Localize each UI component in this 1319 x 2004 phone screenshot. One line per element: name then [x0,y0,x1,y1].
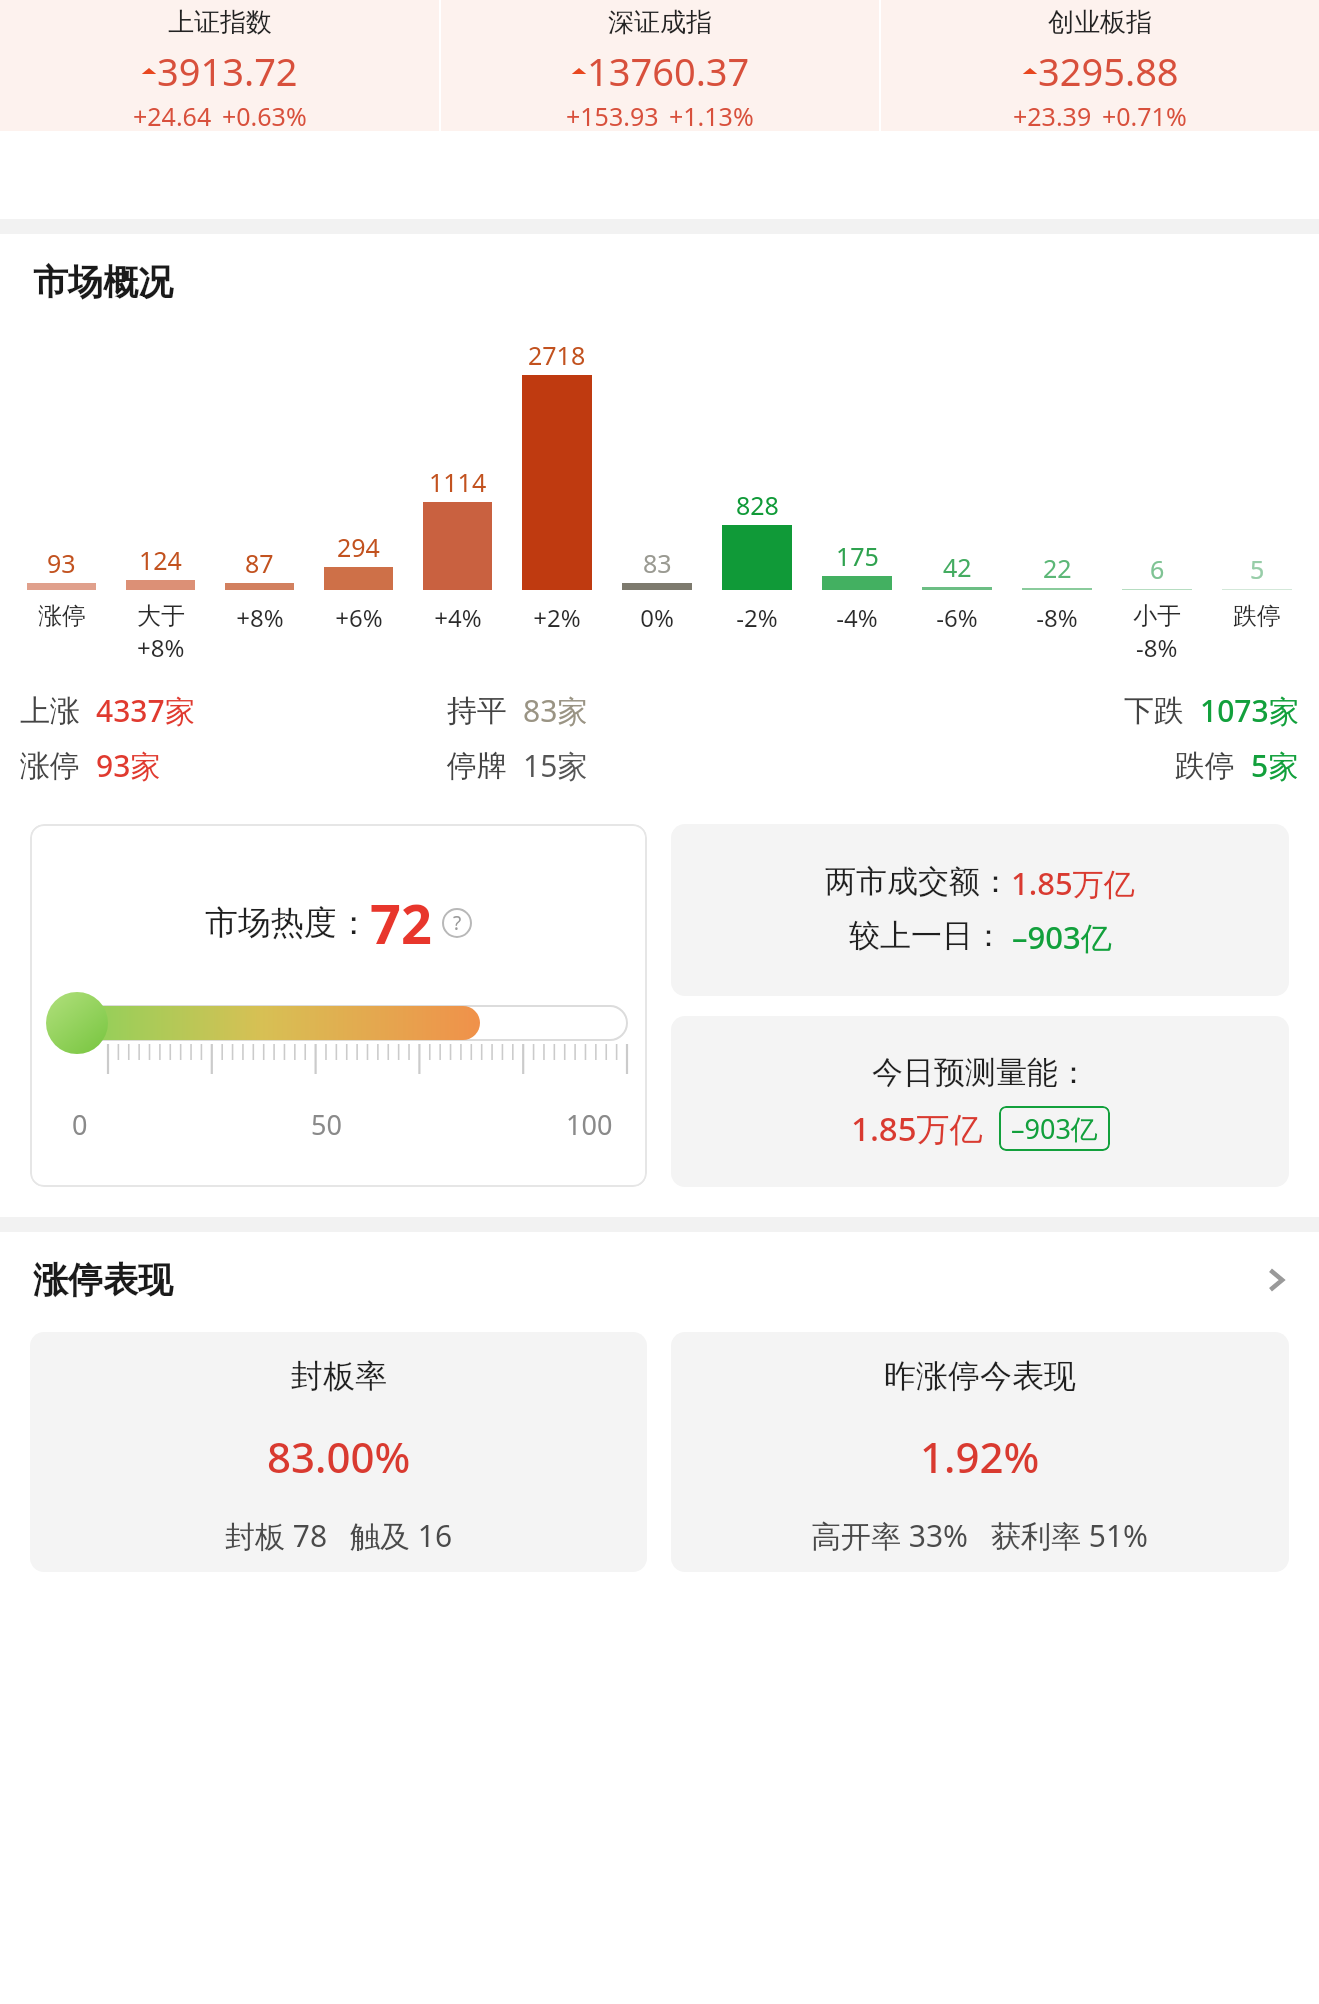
staticText: 高开率 33% [811,1515,969,1556]
staticText: 大于 [137,601,185,631]
staticText: 13760.37 [587,45,750,97]
staticText: +1.13% [669,99,754,131]
staticText: +0.63% [222,99,307,131]
staticText: 3913.72 [157,45,298,97]
staticText: 50 [311,1106,342,1143]
staticText: 今日预测量能： [872,1053,1089,1092]
staticText: 触及 16 [350,1515,453,1556]
button[interactable]: 涨停表现 [0,1258,1319,1302]
staticText: 涨停 [20,747,80,785]
staticText: 175 [836,539,879,573]
staticText: 深证成指 [608,6,712,39]
staticText: 83.00% [267,1428,411,1485]
button[interactable]: 两市成交额： [671,824,1289,996]
staticText: 1.85万亿 [851,1106,983,1151]
staticText: 93家 [96,745,161,786]
staticText: 涨停表现 [33,1258,173,1302]
staticText: 83 [643,546,672,580]
staticText: 获利率 51% [991,1515,1149,1556]
staticText: 87 [245,546,274,580]
staticText: +23.39 [1013,99,1092,131]
staticText: 42 [943,550,972,584]
staticText: 83家 [523,690,588,731]
button[interactable]: 昨涨停今表现 [671,1332,1289,1572]
button[interactable]: 市场热度： [30,824,647,1187]
staticText: ? [453,910,462,936]
staticText: 市场概况 [33,260,173,304]
staticText: -4% [836,601,878,634]
staticText: 上涨 [20,692,80,730]
other: 查看更多涨停表现 [1259,1263,1293,1297]
staticText: 100 [566,1106,613,1143]
staticText: 0 [72,1106,88,1143]
staticText: +8% [137,631,185,664]
staticText: 跌停 [1233,601,1281,631]
staticText: 22 [1043,551,1072,585]
staticText: 72 [370,886,432,960]
staticText: 1073家 [1200,690,1299,731]
staticText: 涨停 [38,601,86,631]
staticText: -6% [936,601,978,634]
staticText: +2% [533,601,581,634]
staticText: 0% [640,601,674,634]
staticText: +153.93 [566,99,659,131]
staticText: 停牌 [447,747,507,785]
staticText: 6 [1150,552,1165,586]
staticText: 1.85万亿 [1011,862,1135,904]
staticText: 跌停 [1175,747,1235,785]
staticText: 124 [139,543,182,577]
staticText: 两市成交额： [825,862,1011,901]
button[interactable]: 上证指数 [0,0,439,131]
staticText: 1114 [429,465,487,499]
staticText: 93 [47,546,76,580]
staticText: -8% [1036,601,1078,634]
staticText: 5 [1250,552,1265,586]
staticText: -2% [736,601,778,634]
button[interactable]: 深证成指 [441,0,879,131]
staticText: 下跌 [1124,692,1184,730]
button[interactable]: 帮助说明 [442,908,472,938]
staticText: –903亿 [1012,916,1112,958]
staticText: -8% [1136,631,1178,664]
staticText: 1.92% [920,1428,1040,1485]
staticText: 创业板指 [1048,6,1152,39]
staticText: +24.64 [133,99,212,131]
staticText: +0.71% [1102,99,1187,131]
staticText: 市场热度： [205,902,370,944]
staticText: 上证指数 [168,6,272,39]
staticText: 持平 [447,692,507,730]
staticText: 封板率 [291,1356,387,1396]
button[interactable]: 创业板指 [881,0,1319,131]
staticText: 5家 [1251,745,1299,786]
staticText: 3295.88 [1038,45,1179,97]
staticText: 828 [736,488,779,522]
staticText: 较上一日： [849,916,1004,955]
staticText: +4% [434,601,482,634]
staticText: 4337家 [96,690,195,731]
staticText: 昨涨停今表现 [884,1356,1076,1396]
staticText: 15家 [523,745,588,786]
staticText: +8% [236,601,284,634]
staticText: 小于 [1133,601,1181,631]
staticText: –903亿 [1011,1110,1098,1147]
staticText: +6% [335,601,383,634]
staticText: 294 [337,530,380,564]
button[interactable]: 今日预测量能： [671,1016,1289,1187]
staticText: 封板 78 [225,1515,328,1556]
staticText: 2718 [528,338,586,372]
button[interactable]: 封板率 [30,1332,647,1572]
